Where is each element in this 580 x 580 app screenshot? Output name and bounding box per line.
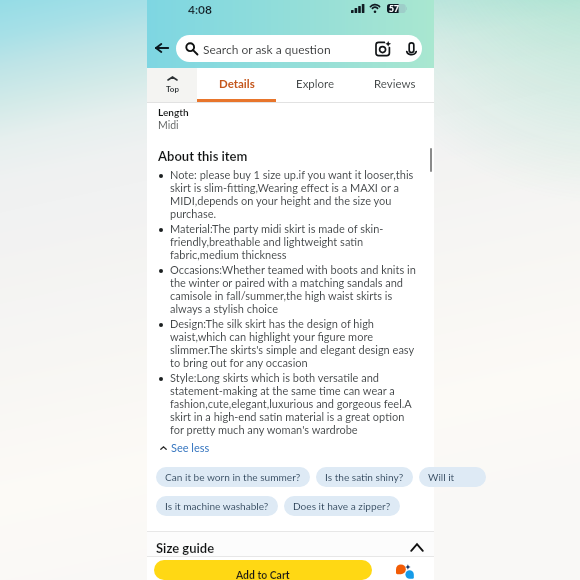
staticText: 4:08: [188, 2, 212, 16]
staticText: Top: [166, 84, 179, 94]
staticText: Reviews: [374, 77, 416, 91]
staticText: Is it machine washable?: [165, 500, 269, 512]
staticText: Style:Long skirts which is both versatil…: [170, 371, 420, 436]
button[interactable]: Does it have a zipper?: [284, 496, 400, 516]
staticText: About this item: [158, 148, 248, 164]
staticText: Design:The silk skirt has the design of …: [170, 317, 420, 369]
staticText: Will it shrink?: [428, 471, 477, 483]
staticText: Length: [158, 106, 189, 118]
staticText: Size guide: [156, 540, 215, 556]
button[interactable]: Can it be worn in the summer?: [156, 467, 310, 487]
other: Collapse size guide: [410, 543, 424, 552]
button[interactable]: Is the satin shiny?: [316, 467, 413, 487]
staticText: Material:The party midi skirt is made of…: [170, 222, 420, 261]
staticText: Midi: [158, 119, 179, 132]
button[interactable]: Back: [149, 35, 175, 61]
staticText: Is the satin shiny?: [325, 471, 404, 483]
staticText: 57: [389, 4, 399, 13]
staticText: Explore: [296, 77, 335, 91]
staticText: Details: [219, 77, 255, 91]
staticText: Search or ask a question: [203, 42, 331, 56]
other: Search by image: [376, 42, 390, 56]
button[interactable]: Is it machine washable?: [156, 496, 278, 516]
button[interactable]: Search or ask a question: [176, 35, 422, 62]
staticText: Does it have a zipper?: [293, 500, 391, 512]
staticText: Note: please buy 1 size up.if you want i…: [170, 168, 420, 220]
button[interactable]: Will it shrink?: [419, 467, 486, 487]
button[interactable]: Size guide: [147, 532, 434, 556]
button[interactable]: Explore: [276, 68, 355, 103]
button[interactable]: See less: [160, 441, 210, 454]
staticText: Can it be worn in the summer?: [165, 471, 301, 483]
button[interactable]: Rufus assistant: [394, 561, 416, 580]
button[interactable]: Details: [197, 68, 276, 103]
staticText: Occasions:Whether teamed with boots and …: [170, 263, 420, 315]
other: Voice search: [406, 42, 417, 55]
button[interactable]: Reviews: [355, 68, 434, 103]
staticText: Add to Cart: [236, 569, 290, 580]
button[interactable]: Add to Cart: [154, 560, 372, 580]
button[interactable]: Top: [147, 68, 197, 103]
staticText: See less: [171, 441, 210, 454]
